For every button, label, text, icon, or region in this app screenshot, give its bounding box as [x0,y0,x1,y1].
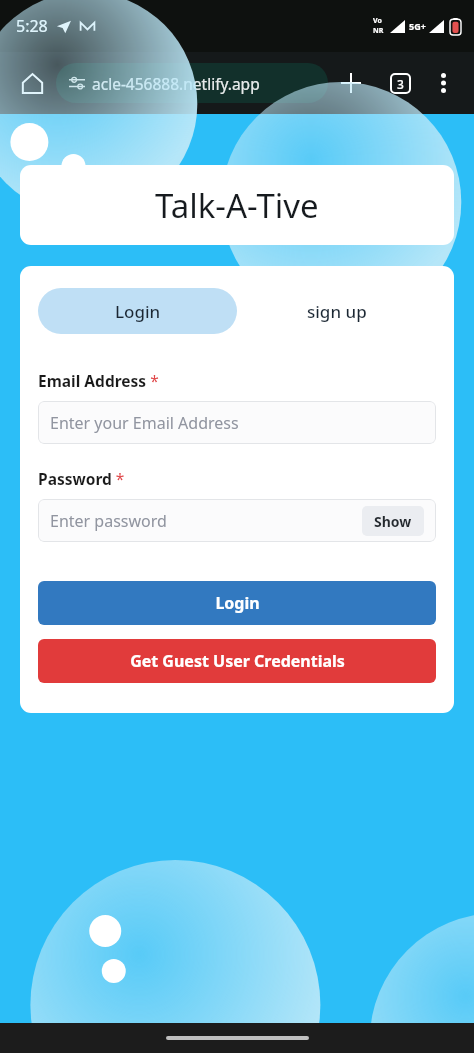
button[interactable]: Tabs, 3 open [380,63,420,103]
button[interactable]: More options [424,64,462,102]
button[interactable]: sign up [237,288,436,334]
button[interactable]: Login [38,581,436,625]
staticText: sign up [307,300,367,323]
staticText: 5:28 [16,15,48,37]
button[interactable]: Enter your Email Address [38,401,436,444]
button[interactable]: Talk-A-Tive [20,165,454,245]
button[interactable]: Login [38,288,237,334]
staticText: Enter password [50,510,362,532]
staticText: acle-456888.netlify.app [92,73,260,94]
button[interactable]: Show [362,506,424,536]
staticText: Password * [38,468,125,489]
staticText: Vo [373,16,382,26]
staticText: Get Guest User Credentials [130,650,345,672]
staticText: Enter your Email Address [50,412,424,434]
button[interactable]: Enter password [38,499,436,542]
button[interactable]: acle-456888.netlify.app [56,63,328,103]
staticText: Email Address * [38,370,159,391]
staticText: 3 [397,76,404,92]
staticText: Show [374,512,412,531]
staticText: NR [373,26,384,36]
staticText: Talk-A-Tive [155,183,319,228]
button[interactable]: New tab [330,62,372,104]
button[interactable]: Home [12,63,52,103]
staticText: 5G+ [409,20,426,32]
staticText: Login [115,300,161,323]
staticText: Login [215,592,260,614]
button[interactable]: Get Guest User Credentials [38,639,436,683]
